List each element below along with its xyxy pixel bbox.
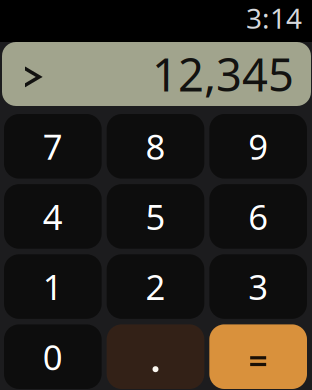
button[interactable]: 12,345	[2, 42, 311, 106]
button[interactable]: 6	[209, 184, 307, 249]
staticText: 8	[145, 123, 165, 169]
staticText: 1	[43, 263, 63, 309]
button[interactable]: 2	[107, 254, 204, 319]
staticText: 3:14	[246, 0, 302, 37]
button[interactable]	[107, 324, 204, 389]
button[interactable]: 9	[209, 114, 307, 179]
staticText: 0	[43, 334, 63, 380]
button[interactable]: 1	[4, 254, 102, 319]
staticText: 4	[43, 193, 63, 239]
button[interactable]	[209, 324, 307, 389]
staticText: 3	[248, 263, 268, 309]
button[interactable]: 7	[4, 114, 102, 179]
button[interactable]: 8	[107, 114, 204, 179]
staticText: 6	[248, 193, 268, 239]
button[interactable]: 3	[209, 254, 307, 319]
staticText: 2	[145, 263, 165, 309]
staticText: 9	[248, 123, 268, 169]
staticText: 5	[145, 193, 165, 239]
button[interactable]: 0	[4, 324, 102, 389]
button[interactable]: 5	[107, 184, 204, 249]
staticText: 7	[43, 123, 63, 169]
button[interactable]: 4	[4, 184, 102, 249]
staticText: 12,345	[152, 44, 294, 104]
